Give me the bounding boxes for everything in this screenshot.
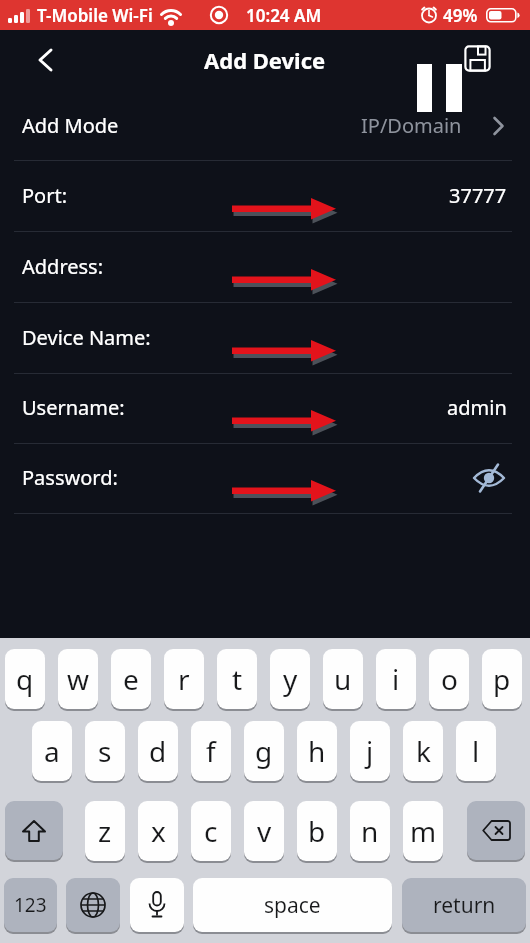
button[interactable]: e [111,649,151,709]
staticText: k [416,732,431,770]
button[interactable]: a [32,721,72,781]
staticText: z [98,812,112,850]
button[interactable]: Username: [0,372,530,443]
staticText: Password: [22,464,118,491]
staticText: Add Mode [22,112,119,139]
button[interactable]: d [138,721,178,781]
staticText: Add Device [204,45,326,75]
button[interactable]: t [217,649,257,709]
staticText: u [334,660,352,698]
staticText: x [151,812,166,850]
button[interactable]: z [85,801,125,861]
button[interactable] [66,878,120,932]
button[interactable]: h [297,721,337,781]
staticText: space [264,891,321,920]
button[interactable]: i [376,649,416,709]
staticText: i [392,660,400,698]
staticText: admin [447,394,507,421]
staticText: IP/Domain [361,112,462,139]
staticText: r [178,660,190,698]
button[interactable]: q [5,649,45,709]
staticText: l [472,732,480,770]
staticText: b [308,812,326,850]
button[interactable]: n [350,801,390,861]
staticText: q [16,660,34,698]
button[interactable] [467,801,525,860]
staticText: Port: [22,182,68,209]
button[interactable]: k [403,721,443,781]
button[interactable]: m [403,801,443,861]
button[interactable]: return [402,878,526,932]
staticText: d [149,732,167,770]
staticText: 37777 [449,182,507,209]
button[interactable]: Port: [0,160,530,231]
staticText: 10:24 AM [246,4,322,27]
button[interactable]: y [270,649,310,709]
button[interactable]: Device Name: [0,302,530,373]
button[interactable]: x [138,801,178,861]
staticText: Device Name: [22,324,151,351]
button[interactable] [460,41,494,75]
staticText: p [493,660,511,698]
staticText: a [44,732,60,770]
staticText: j [366,732,374,770]
button[interactable]: Address: [0,231,530,302]
staticText: T-Mobile Wi-Fi [37,4,153,27]
button[interactable]: f [191,721,231,781]
button[interactable]: w [58,649,98,709]
staticText: Username: [22,394,125,421]
button[interactable]: space [193,878,392,932]
button[interactable]: v [244,801,284,861]
button[interactable]: l [456,721,496,781]
button[interactable]: u [323,649,363,709]
staticText: c [204,812,218,850]
staticText: w [67,660,90,698]
staticText: v [257,812,272,850]
staticText: n [361,812,379,850]
button[interactable]: o [429,649,469,709]
staticText: o [441,660,458,698]
staticText: e [123,660,139,698]
staticText: 123 [14,892,47,918]
button[interactable]: r [164,649,204,709]
button[interactable]: Add Mode [0,90,530,160]
staticText: Address: [22,253,104,280]
button[interactable]: p [482,649,522,709]
button[interactable]: 123 [4,878,57,932]
staticText: m [410,812,437,850]
button[interactable]: j [350,721,390,781]
button[interactable] [28,42,64,78]
button[interactable]: Password: [0,442,530,513]
staticText: y [283,660,298,698]
button[interactable] [472,461,506,495]
staticText: s [98,732,112,770]
staticText: f [206,732,216,770]
button[interactable]: c [191,801,231,861]
button[interactable]: g [244,721,284,781]
staticText: t [232,660,243,698]
button[interactable] [130,878,184,932]
staticText: g [255,732,273,770]
button[interactable]: b [297,801,337,861]
button[interactable]: s [85,721,125,781]
staticText: h [308,732,326,770]
staticText: return [433,891,496,920]
staticText: 49% [443,4,478,27]
button[interactable] [5,801,63,860]
